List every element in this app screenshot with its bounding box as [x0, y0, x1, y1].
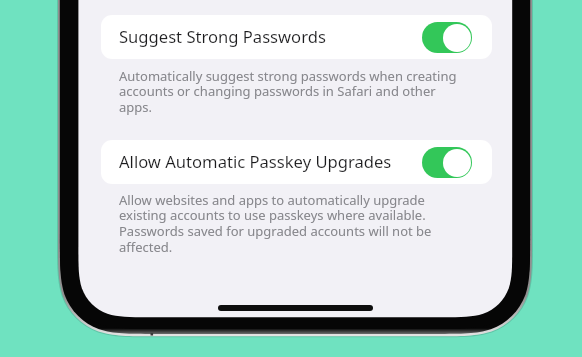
staticText: Automatically suggest strong passwords w… [119, 67, 457, 116]
staticText: Suggest Strong Passwords [119, 25, 326, 48]
button[interactable]: Allow Automatic Passkey Upgrades [101, 140, 492, 184]
button[interactable]: Suggest Strong Passwords [101, 15, 492, 59]
staticText: Allow websites and apps to automatically… [119, 191, 432, 256]
button[interactable]: Toggle Allow Automatic Passkey Upgrades [422, 147, 472, 178]
button[interactable]: Toggle Suggest Strong Passwords [422, 22, 472, 53]
staticText: Allow Automatic Passkey Upgrades [119, 150, 392, 173]
